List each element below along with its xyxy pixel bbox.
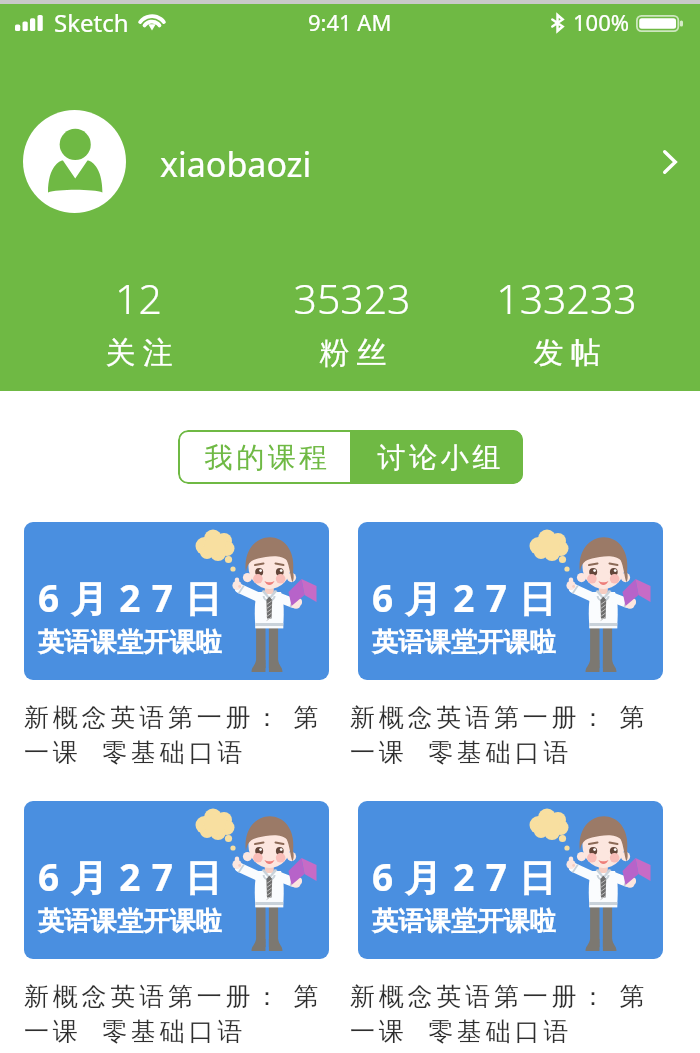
button[interactable]: 12 <box>31 270 245 372</box>
staticText: 英语课堂开课啦 <box>38 905 223 938</box>
staticText: 100% <box>573 7 630 37</box>
staticText: 12 <box>115 270 162 326</box>
staticText: 6月27日 <box>372 572 567 623</box>
staticText: 9:41 AM <box>308 7 392 37</box>
staticText: 发帖 <box>530 334 604 372</box>
staticText: 我的课程 <box>203 440 329 475</box>
button[interactable]: 6月27日 <box>350 522 676 768</box>
staticText: 新概念英语第一册： 第一课 零基础口语 <box>24 978 350 1047</box>
staticText: 6月27日 <box>38 572 233 623</box>
staticText: xiaobaozi <box>160 141 312 187</box>
button[interactable]: Open profile details <box>653 145 687 179</box>
button[interactable]: xiaobaozi <box>0 110 700 213</box>
staticText: 关注 <box>102 334 176 372</box>
staticText: 英语课堂开课啦 <box>38 626 223 659</box>
button[interactable]: 6月27日 <box>24 522 350 768</box>
staticText: 英语课堂开课啦 <box>372 905 557 938</box>
staticText: 6月27日 <box>372 851 567 902</box>
staticText: 133233 <box>496 270 637 326</box>
staticText: 35323 <box>293 270 411 326</box>
staticText: 新概念英语第一册： 第一课 零基础口语 <box>24 699 350 768</box>
button[interactable]: 我的课程 <box>178 430 350 484</box>
staticText: 新概念英语第一册： 第一课 零基础口语 <box>350 699 676 768</box>
staticText: 英语课堂开课啦 <box>372 626 557 659</box>
button[interactable]: 6月27日 <box>350 801 676 1047</box>
staticText: 新概念英语第一册： 第一课 零基础口语 <box>350 978 676 1047</box>
staticText: 讨论小组 <box>376 440 502 475</box>
staticText: 粉丝 <box>316 334 390 372</box>
staticText: 6月27日 <box>38 851 233 902</box>
button[interactable]: 6月27日 <box>24 801 350 1047</box>
staticText: Sketch <box>54 6 129 39</box>
button[interactable]: 讨论小组 <box>350 430 523 484</box>
button[interactable]: 133233 <box>459 270 673 372</box>
button[interactable]: 35323 <box>245 270 459 372</box>
